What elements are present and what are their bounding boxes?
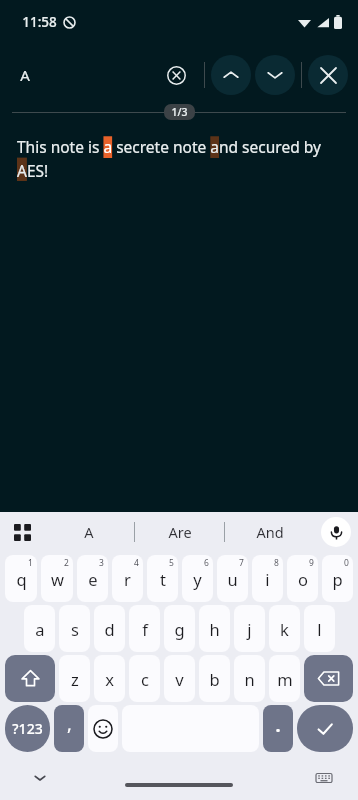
staticText: c: [141, 668, 149, 690]
staticText: m: [277, 668, 293, 690]
staticText: h: [209, 618, 220, 640]
button[interactable]: n: [234, 655, 265, 702]
staticText: 9: [309, 557, 314, 569]
staticText: 3: [99, 557, 104, 569]
staticText: p: [332, 568, 343, 590]
button[interactable]: x: [94, 655, 125, 702]
staticText: w: [51, 568, 64, 590]
button[interactable]: o: [287, 555, 318, 602]
button[interactable]: Voice input: [321, 517, 351, 547]
button[interactable]: Previous match: [211, 55, 251, 95]
staticText: n: [244, 668, 255, 690]
button[interactable]: e: [77, 555, 108, 602]
button[interactable]: Shift: [5, 655, 55, 702]
button[interactable]: Emoji: [88, 705, 118, 752]
staticText: A: [20, 65, 30, 85]
button[interactable]: And: [225, 512, 314, 552]
button[interactable]: Backspace: [304, 655, 353, 702]
staticText: 5: [169, 557, 174, 569]
staticText: k: [280, 618, 289, 640]
staticText: u: [227, 568, 238, 590]
staticText: 6: [204, 557, 209, 569]
staticText: i: [265, 568, 270, 590]
staticText: A: [84, 522, 94, 542]
button[interactable]: m: [269, 655, 300, 702]
button[interactable]: ?123: [5, 705, 50, 752]
button[interactable]: .: [263, 705, 293, 752]
button[interactable]: Toolbar: [0, 512, 44, 552]
staticText: 11:58: [22, 13, 57, 31]
staticText: e: [88, 568, 98, 590]
staticText: And: [256, 522, 284, 542]
button[interactable]: i: [252, 555, 283, 602]
button[interactable]: Change keyboard: [312, 766, 336, 790]
staticText: q: [16, 568, 27, 590]
button[interactable]: k: [269, 605, 300, 652]
button[interactable]: y: [182, 555, 213, 602]
button[interactable]: u: [217, 555, 248, 602]
staticText: s: [71, 618, 79, 640]
staticText: ?123: [12, 719, 43, 738]
button[interactable]: Close find: [308, 55, 348, 95]
staticText: l: [317, 618, 322, 640]
staticText: y: [193, 568, 202, 590]
staticText: o: [298, 568, 308, 590]
staticText: ,: [67, 712, 72, 737]
button[interactable]: h: [199, 605, 230, 652]
button[interactable]: d: [94, 605, 125, 652]
staticText: g: [174, 618, 185, 640]
button[interactable]: Are: [135, 512, 224, 552]
button[interactable]: A: [44, 512, 134, 552]
button[interactable]: l: [304, 605, 335, 652]
staticText: This note is a secrete note and secured …: [17, 136, 344, 181]
button[interactable]: Hide keyboard: [28, 766, 52, 790]
staticText: 4: [134, 557, 139, 569]
button[interactable]: a: [24, 605, 55, 652]
staticText: t: [160, 568, 166, 590]
staticText: 2: [64, 557, 69, 569]
button[interactable]: b: [199, 655, 230, 702]
staticText: 1/3: [171, 105, 188, 119]
button[interactable]: z: [59, 655, 90, 702]
staticText: b: [209, 668, 220, 690]
staticText: 7: [239, 557, 244, 569]
button[interactable]: w: [41, 555, 73, 602]
button[interactable]: Next match: [255, 55, 295, 95]
staticText: x: [105, 668, 114, 690]
button[interactable]: t: [147, 555, 178, 602]
button[interactable]: s: [59, 605, 90, 652]
staticText: d: [104, 618, 115, 640]
button[interactable]: f: [129, 605, 160, 652]
staticText: 8: [274, 557, 279, 569]
staticText: a: [35, 618, 45, 640]
button[interactable]: q: [5, 555, 37, 602]
button[interactable]: p: [322, 555, 353, 602]
button[interactable]: j: [234, 605, 265, 652]
staticText: 1: [28, 557, 33, 569]
staticText: v: [175, 668, 184, 690]
button[interactable]: g: [164, 605, 195, 652]
staticText: z: [71, 668, 79, 690]
button[interactable]: Clear: [154, 53, 198, 97]
staticText: j: [247, 618, 252, 640]
button[interactable]: c: [129, 655, 160, 702]
button[interactable]: Enter: [297, 705, 353, 752]
staticText: f: [142, 618, 148, 640]
staticText: .: [275, 713, 281, 738]
button[interactable]: r: [112, 555, 143, 602]
button[interactable]: v: [164, 655, 195, 702]
staticText: Are: [168, 522, 192, 542]
button[interactable]: ,: [54, 705, 84, 752]
staticText: r: [124, 568, 131, 590]
staticText: 0: [344, 557, 349, 569]
